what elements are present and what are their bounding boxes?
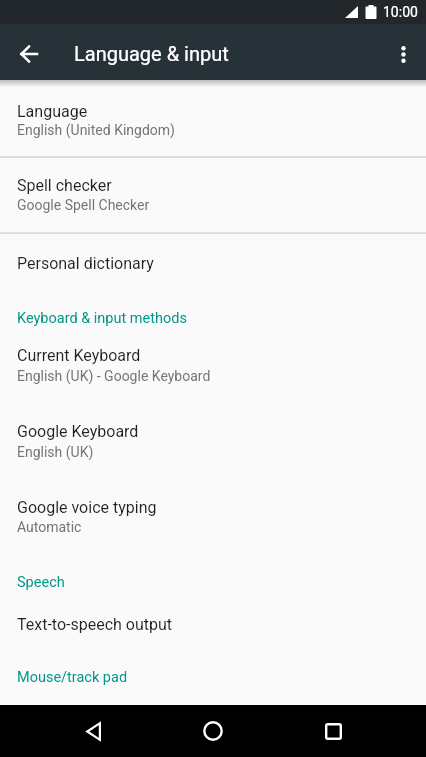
staticText: Google voice typing (17, 498, 157, 517)
button[interactable] (1, 26, 57, 82)
staticText: Language (17, 102, 88, 121)
button[interactable]: Current Keyboard (0, 325, 426, 401)
button[interactable]: Text-to-speech output (0, 594, 426, 654)
staticText: Language & input (74, 42, 229, 65)
button[interactable]: Google voice typing (0, 477, 426, 553)
staticText: Google Spell Checker (17, 197, 150, 213)
button[interactable] (53, 705, 133, 757)
staticText: Keyboard & input methods (17, 310, 187, 327)
staticText: Spell checker (17, 176, 112, 195)
staticText: 10:00 (383, 4, 418, 20)
button[interactable] (380, 26, 426, 82)
button[interactable]: Personal dictionary (0, 234, 426, 294)
button[interactable]: Google Keyboard (0, 401, 426, 477)
button[interactable] (293, 705, 373, 757)
button[interactable] (173, 705, 253, 757)
staticText: Google Keyboard (17, 422, 139, 441)
staticText: Speech (17, 574, 65, 591)
button[interactable]: Spell checker (0, 158, 426, 232)
staticText: English (United Kingdom) (17, 122, 175, 138)
button[interactable]: Language (0, 80, 426, 156)
staticText: Personal dictionary (17, 254, 154, 273)
staticText: English (UK) (17, 444, 94, 460)
staticText: English (UK) - Google Keyboard (17, 368, 211, 384)
staticText: Mouse/track pad (17, 669, 128, 686)
staticText: Text-to-speech output (17, 615, 173, 634)
staticText: Current Keyboard (17, 346, 141, 365)
staticText: Automatic (17, 519, 82, 535)
